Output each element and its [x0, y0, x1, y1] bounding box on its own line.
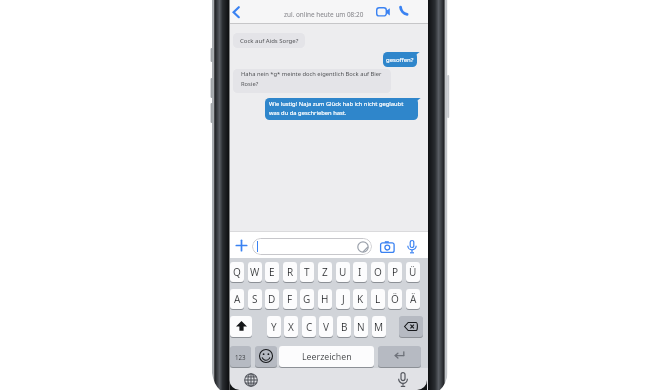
staticText: K	[357, 292, 364, 306]
staticText: T	[304, 265, 310, 279]
button[interactable]: G	[300, 289, 314, 309]
button[interactable]: C	[302, 316, 316, 337]
button[interactable]: L	[371, 289, 385, 309]
button[interactable]: K	[353, 289, 367, 309]
button[interactable]: A	[230, 289, 244, 309]
button[interactable]	[378, 346, 421, 367]
button[interactable]	[407, 240, 417, 254]
staticText: M	[374, 320, 384, 334]
button[interactable]: S	[248, 289, 262, 309]
button[interactable]	[380, 241, 395, 253]
staticText: Ü	[409, 265, 417, 279]
button[interactable]: Y	[267, 316, 281, 337]
staticText: S	[252, 292, 258, 306]
staticText: Z	[322, 265, 328, 279]
button[interactable]: Ö	[388, 289, 402, 309]
button[interactable]	[376, 7, 391, 17]
staticText: P	[392, 265, 399, 279]
staticText: G	[303, 292, 311, 306]
staticText: J	[342, 292, 345, 306]
button[interactable]: J	[336, 289, 350, 309]
button[interactable]: Ä	[406, 289, 420, 309]
staticText: F	[287, 292, 293, 306]
button[interactable]	[236, 240, 247, 251]
button[interactable]: N	[354, 316, 368, 337]
button[interactable]	[230, 4, 244, 20]
button[interactable]: T	[300, 262, 314, 282]
staticText: B	[341, 320, 348, 334]
staticText: O	[374, 265, 382, 279]
staticText: A	[234, 292, 241, 306]
button[interactable]	[402, 6, 415, 18]
staticText: Haha nein *g* meinte doch eigentlich Boc…	[241, 70, 382, 78]
staticText: Ö	[391, 292, 399, 306]
staticText: Leerzeichen	[302, 351, 352, 363]
staticText: Rosie?	[241, 80, 259, 88]
button[interactable]: O	[371, 262, 385, 282]
button[interactable]	[255, 346, 277, 367]
staticText: R	[287, 265, 294, 279]
button[interactable]: I	[353, 262, 367, 282]
staticText: zul. online heute um 08:20	[284, 10, 364, 19]
button[interactable]: Q	[230, 262, 244, 282]
button[interactable]: V	[319, 316, 333, 337]
button[interactable]: R	[283, 262, 297, 282]
staticText: W	[250, 265, 260, 279]
staticText: gesoffen?	[386, 56, 414, 64]
staticText: Ä	[410, 292, 417, 306]
staticText: L	[375, 292, 381, 306]
button[interactable]	[252, 238, 372, 255]
button[interactable]	[399, 316, 423, 337]
staticText: X	[288, 320, 294, 334]
button[interactable]: 123	[230, 346, 251, 367]
button[interactable]: B	[337, 316, 351, 337]
staticText: V	[323, 320, 329, 334]
staticText: Y	[271, 320, 277, 334]
button[interactable]	[244, 373, 258, 387]
staticText: Q	[233, 265, 241, 279]
staticText: 123	[235, 353, 246, 361]
staticText: C	[306, 320, 313, 334]
button[interactable]: Z	[318, 262, 332, 282]
staticText: was du da geschrieben hast.	[269, 109, 347, 117]
button[interactable]: P	[388, 262, 402, 282]
staticText: D	[268, 292, 276, 306]
button[interactable]: D	[265, 289, 279, 309]
button[interactable]: E	[265, 262, 279, 282]
button[interactable]	[357, 241, 369, 253]
button[interactable]: M	[372, 316, 386, 337]
staticText: H	[321, 292, 329, 306]
staticText: I	[358, 265, 362, 279]
button[interactable]: Leerzeichen	[279, 346, 374, 367]
button[interactable]: F	[283, 289, 297, 309]
button[interactable]: W	[248, 262, 262, 282]
button[interactable]: X	[284, 316, 298, 337]
button[interactable]: H	[318, 289, 332, 309]
staticText: U	[339, 265, 347, 279]
staticText: E	[269, 265, 275, 279]
button[interactable]: Ü	[406, 262, 420, 282]
staticText: Cock auf Aids Sorge?	[240, 37, 299, 45]
staticText: Wie lustig! Naja zum Glück hab ich nicht…	[269, 100, 404, 108]
button[interactable]	[398, 372, 408, 388]
button[interactable]: U	[336, 262, 350, 282]
staticText: N	[357, 320, 365, 334]
button[interactable]	[230, 316, 252, 337]
